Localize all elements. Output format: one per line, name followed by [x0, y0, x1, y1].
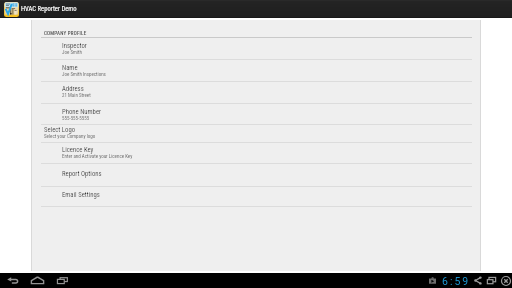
staticText: Address — [62, 85, 84, 93]
staticText: Select Logo — [44, 126, 76, 134]
button[interactable]: Name — [32, 60, 480, 81]
staticText: 21 Main Street — [62, 92, 91, 98]
button[interactable]: App icon, up — [4, 2, 19, 17]
staticText: 6:59 — [442, 275, 471, 287]
staticText: Joe Smith — [62, 49, 82, 55]
staticText: COMPANY PROFILE — [44, 30, 87, 36]
staticText: Licence Key — [62, 146, 94, 154]
staticText: Email Settings — [62, 191, 100, 199]
button[interactable]: Report Options — [32, 164, 480, 186]
button[interactable]: Home — [31, 273, 44, 288]
button[interactable]: Back — [6, 273, 19, 288]
button[interactable]: Close — [501, 273, 511, 288]
button[interactable]: Select Logo — [32, 125, 480, 142]
button[interactable]: Licence Key — [32, 143, 480, 163]
staticText: 555-555-5555 — [62, 115, 90, 121]
staticText: Select your Company logo — [44, 133, 96, 139]
button[interactable]: Windows — [487, 273, 496, 288]
staticText: Inspector — [62, 42, 87, 50]
staticText: HVAC Reporter Demo — [21, 5, 77, 13]
button[interactable]: Address — [32, 82, 480, 103]
button[interactable]: Email Settings — [32, 187, 480, 206]
staticText: Joe Smith Inspections — [62, 71, 106, 77]
staticText: Enter and Activate your Licence Key — [62, 153, 133, 159]
staticText: Report Options — [62, 170, 102, 178]
staticText: Name — [62, 64, 78, 72]
staticText: Phone Number — [62, 108, 102, 116]
button[interactable]: Recent apps — [56, 273, 69, 288]
button[interactable]: Share — [473, 273, 482, 288]
button[interactable]: Screenshot — [428, 273, 436, 288]
button[interactable]: Inspector — [32, 38, 480, 59]
button[interactable]: Phone Number — [32, 104, 480, 124]
